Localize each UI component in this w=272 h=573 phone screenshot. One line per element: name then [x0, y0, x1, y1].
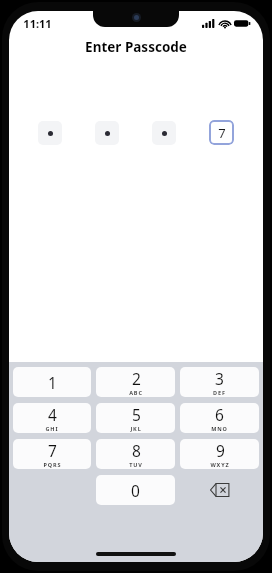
- button[interactable]: Passcode digit entered: [38, 121, 62, 145]
- button[interactable]: Passcode digit entered: [95, 121, 119, 145]
- staticText: 7: [48, 440, 57, 461]
- button[interactable]: 0: [96, 475, 175, 505]
- staticText: MNO: [211, 425, 228, 432]
- staticText: 3: [215, 368, 224, 389]
- button[interactable]: 8: [96, 439, 175, 469]
- staticText: Enter Passcode: [85, 38, 187, 56]
- staticText: 0: [131, 480, 140, 501]
- staticText: ABC: [129, 389, 143, 396]
- button[interactable]: 1: [13, 367, 91, 397]
- staticText: PQRS: [43, 461, 62, 468]
- button[interactable]: 5: [96, 403, 175, 433]
- staticText: TUV: [129, 461, 143, 468]
- staticText: 1: [48, 372, 57, 393]
- staticText: WXYZ: [210, 461, 230, 468]
- button[interactable]: 6: [180, 403, 259, 433]
- button[interactable]: 2: [96, 367, 175, 397]
- button[interactable]: 7: [209, 120, 234, 145]
- staticText: JKL: [130, 425, 142, 432]
- staticText: 9: [216, 440, 225, 461]
- staticText: 5: [132, 404, 141, 425]
- button[interactable]: 3: [180, 367, 259, 397]
- staticText: GHI: [45, 425, 59, 432]
- button[interactable]: 9: [180, 439, 259, 469]
- staticText: DEF: [213, 389, 226, 396]
- staticText: 2: [132, 368, 141, 389]
- button[interactable]: Backspace: [180, 475, 259, 505]
- staticText: 4: [48, 404, 57, 425]
- button[interactable]: 7: [13, 439, 91, 469]
- staticText: 7: [218, 124, 226, 142]
- staticText: 8: [132, 440, 141, 461]
- staticText: 11:11: [23, 16, 52, 31]
- staticText: 6: [215, 404, 224, 425]
- button[interactable]: Passcode digit entered: [152, 121, 176, 145]
- button[interactable]: 4: [13, 403, 91, 433]
